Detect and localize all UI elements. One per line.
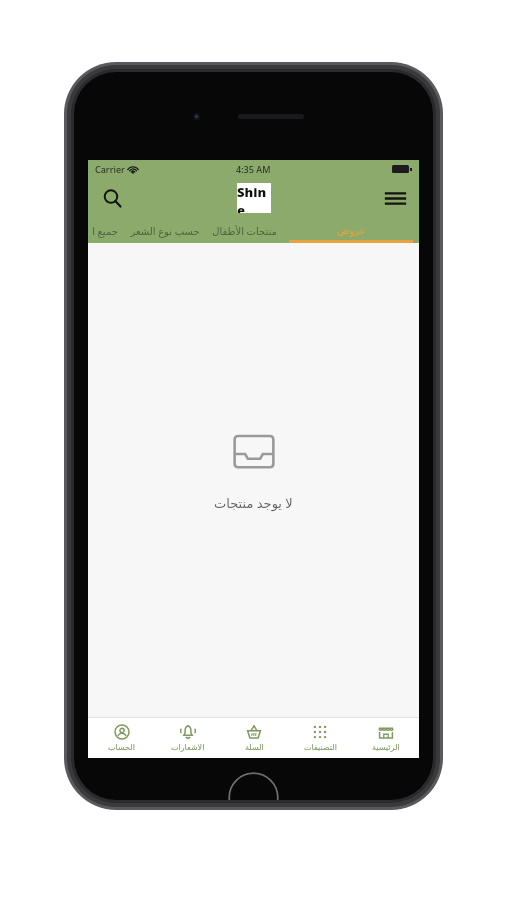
button[interactable]: التصنيفات xyxy=(287,718,353,758)
staticText: منتجات الأطفال xyxy=(212,224,277,238)
button[interactable]: Menu xyxy=(379,182,411,214)
button[interactable]: الحساب xyxy=(88,718,155,758)
staticText: Carrier xyxy=(95,163,125,175)
staticText: عروض xyxy=(337,225,366,237)
button[interactable]: منتجات الأطفال xyxy=(206,218,283,243)
staticText: الرئيسية xyxy=(372,743,400,752)
staticText: Shine xyxy=(237,183,271,213)
button[interactable]: حسب نوع الشعر xyxy=(124,218,206,243)
staticText: السلة xyxy=(245,743,264,752)
staticText: الاشعارات xyxy=(171,743,205,752)
button[interactable]: Shine logo xyxy=(237,183,271,213)
staticText: التصنيفات xyxy=(304,743,337,752)
staticText: لا يوجد منتجات xyxy=(214,494,293,512)
button[interactable]: الاشعارات xyxy=(155,718,221,758)
button[interactable]: Search xyxy=(96,182,128,214)
staticText: حسب نوع الشعر xyxy=(130,224,200,238)
button[interactable]: عروض xyxy=(283,218,419,243)
staticText: الحساب xyxy=(108,743,135,752)
button[interactable]: جميع ا xyxy=(88,218,124,243)
staticText: 4:35 AM xyxy=(236,163,271,175)
button[interactable]: السلة xyxy=(221,718,287,758)
staticText: جميع ا xyxy=(92,224,118,238)
button[interactable]: الرئيسية xyxy=(353,718,419,758)
